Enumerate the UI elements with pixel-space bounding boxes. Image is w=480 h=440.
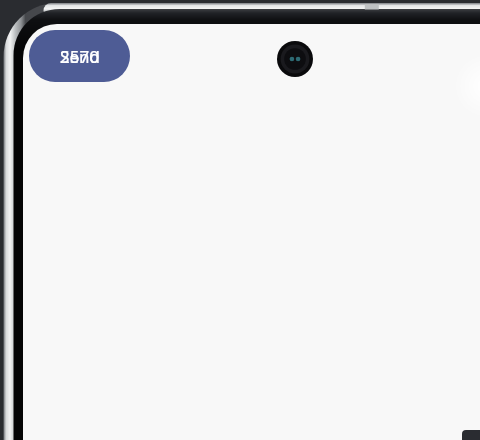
- button[interactable]: 2570: [29, 30, 130, 82]
- button[interactable]: Corner control: [462, 430, 480, 440]
- staticText: Send: [60, 45, 100, 68]
- other: Front camera: [277, 41, 313, 77]
- staticText: 2570: [60, 45, 99, 68]
